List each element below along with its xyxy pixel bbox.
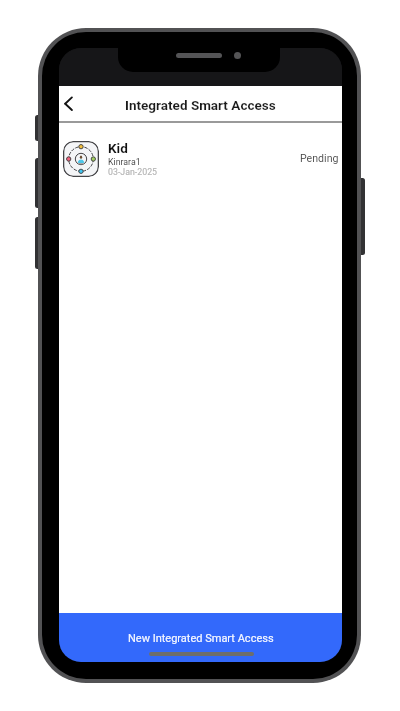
- button[interactable]: Back: [59, 91, 84, 117]
- staticText: Pending: [300, 152, 339, 164]
- staticText: New Integrated Smart Access: [128, 632, 274, 645]
- button[interactable]: Kid: [59, 123, 342, 194]
- staticText: Kinrara1: [108, 157, 141, 167]
- button[interactable]: New Integrated Smart Access: [59, 613, 342, 662]
- staticText: Kid: [108, 140, 128, 156]
- staticText: Integrated Smart Access: [125, 97, 276, 113]
- staticText: 03-Jan-2025: [108, 167, 158, 177]
